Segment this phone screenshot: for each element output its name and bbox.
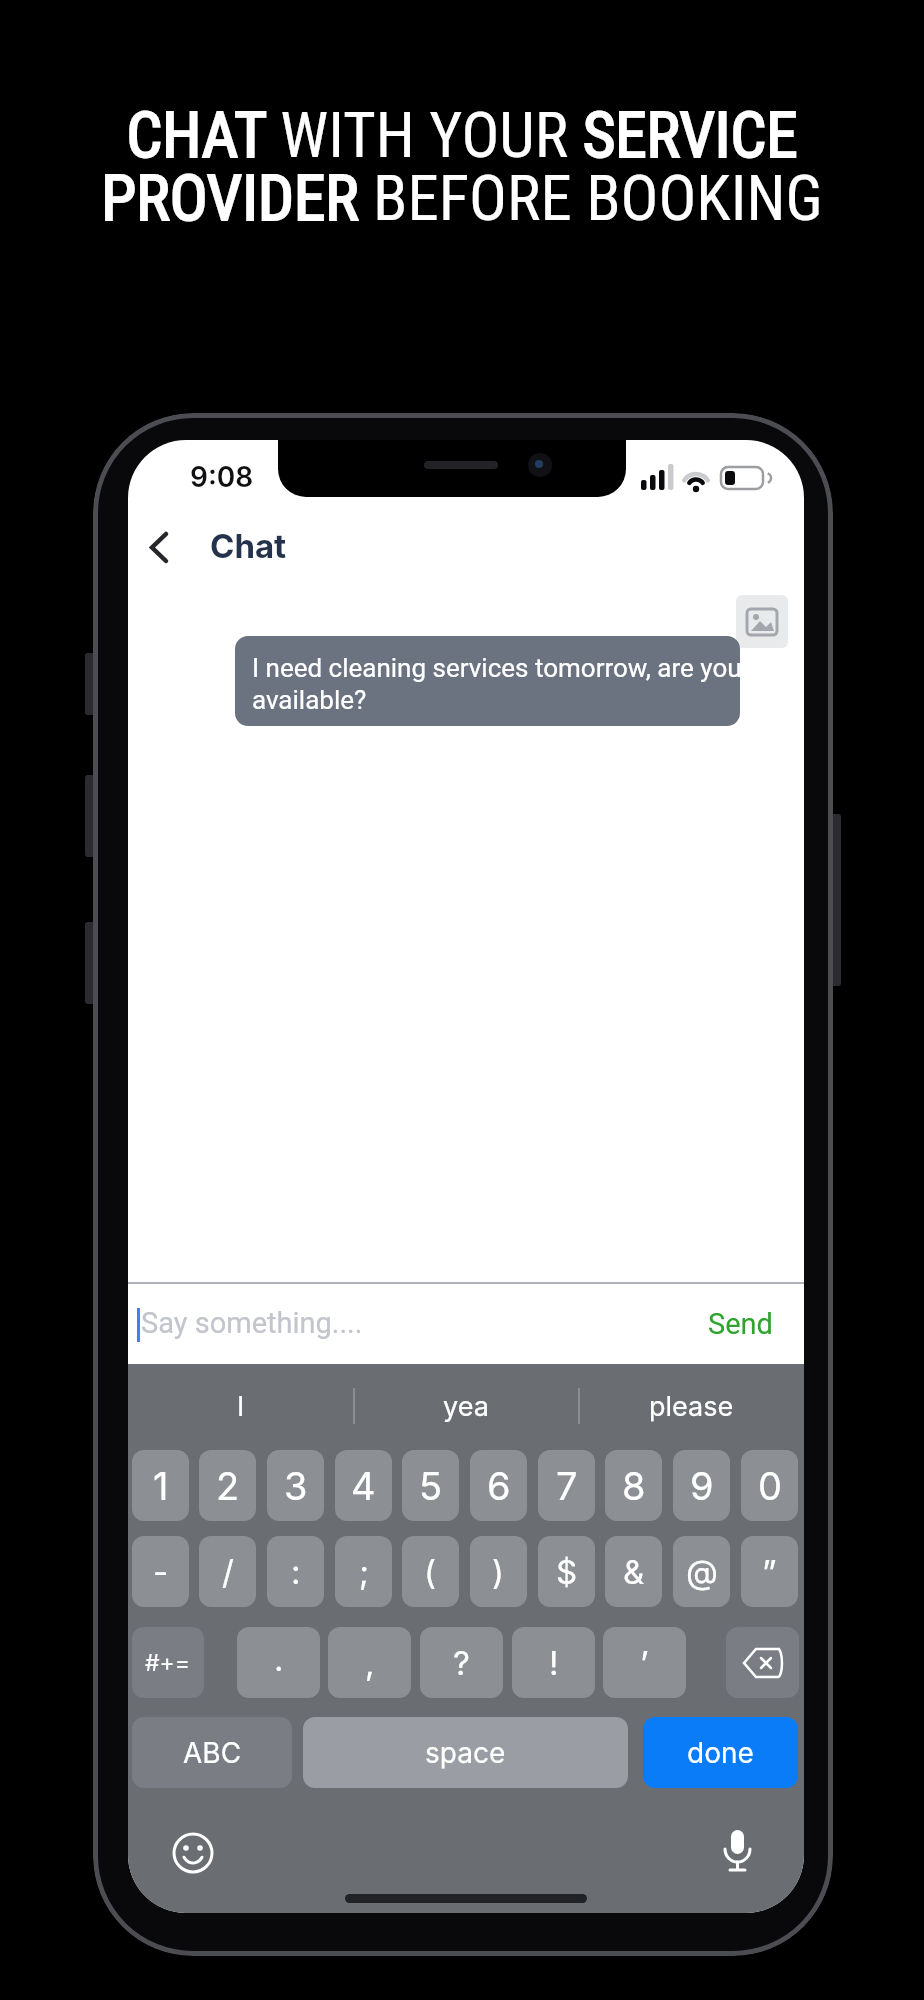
button[interactable]: space [303, 1717, 628, 1788]
staticText: Say something.... [141, 1306, 363, 1340]
staticText: ( [424, 1552, 437, 1592]
button[interactable] [736, 595, 788, 648]
staticText: 5 [419, 1463, 443, 1509]
button[interactable]: ; [335, 1536, 392, 1607]
staticText: ABC [183, 1736, 242, 1770]
button[interactable]: ! [512, 1627, 595, 1698]
staticText: 6 [487, 1463, 511, 1509]
button[interactable]: 9 [673, 1450, 730, 1521]
button[interactable]: please [578, 1383, 804, 1429]
button[interactable]: Say something.... [128, 1284, 804, 1364]
staticText: #+= [145, 1649, 191, 1677]
staticText: 4 [351, 1463, 376, 1509]
button[interactable]: 2 [199, 1450, 256, 1521]
staticText: I [237, 1390, 245, 1423]
staticText: 2 [216, 1463, 240, 1509]
staticText: done [687, 1736, 754, 1770]
button[interactable]: ” [741, 1536, 798, 1607]
staticText: 9 [690, 1463, 714, 1509]
staticText: @ [686, 1552, 718, 1592]
staticText: . [274, 1639, 284, 1679]
staticText: 9:08 [190, 460, 254, 494]
button[interactable]: ABC [132, 1717, 292, 1788]
staticText: ? [453, 1643, 470, 1683]
button[interactable]: - [132, 1536, 189, 1607]
button[interactable]: , [328, 1627, 411, 1698]
button[interactable]: $ [538, 1536, 595, 1607]
staticText: ; [359, 1552, 369, 1592]
button[interactable]: ) [470, 1536, 527, 1607]
button[interactable]: Send [708, 1307, 773, 1341]
staticText: 0 [758, 1463, 782, 1509]
button[interactable]: 7 [538, 1450, 595, 1521]
staticText: , [365, 1643, 375, 1683]
button[interactable]: yea [353, 1383, 578, 1429]
staticText: please [649, 1390, 734, 1423]
button[interactable]: ( [402, 1536, 459, 1607]
button[interactable]: ? [420, 1627, 503, 1698]
staticText: & [623, 1552, 645, 1592]
button[interactable]: 6 [470, 1450, 527, 1521]
button[interactable] [726, 1627, 799, 1698]
button[interactable]: 3 [267, 1450, 324, 1521]
staticText: I need cleaning services tomorrow, are y… [252, 653, 740, 716]
button[interactable] [168, 1828, 218, 1878]
button[interactable]: & [605, 1536, 662, 1607]
staticText: ” [762, 1552, 777, 1592]
staticText: / [222, 1552, 234, 1592]
button[interactable]: 5 [402, 1450, 459, 1521]
staticText: ! [549, 1643, 559, 1683]
button[interactable]: 0 [741, 1450, 798, 1521]
button[interactable] [713, 1826, 763, 1878]
button[interactable]: . [237, 1627, 320, 1698]
staticText: - [153, 1552, 169, 1592]
staticText: ) [492, 1552, 505, 1592]
button[interactable] [136, 520, 186, 570]
staticText: 7 [556, 1463, 578, 1509]
staticText: Chat [210, 526, 287, 566]
staticText: $ [556, 1552, 578, 1592]
button[interactable]: ’ [603, 1627, 686, 1698]
button[interactable]: 4 [335, 1450, 392, 1521]
button[interactable]: done [643, 1717, 798, 1788]
staticText: 1 [153, 1463, 169, 1509]
button[interactable]: 8 [605, 1450, 662, 1521]
button[interactable]: @ [673, 1536, 730, 1607]
button[interactable]: / [199, 1536, 256, 1607]
staticText: yea [443, 1390, 489, 1423]
button[interactable]: : [267, 1536, 324, 1607]
staticText: space [425, 1736, 506, 1770]
staticText: PROVIDER BEFORE BOOKING [0, 162, 924, 236]
button[interactable]: #+= [132, 1627, 204, 1698]
staticText: : [291, 1552, 301, 1592]
button[interactable]: 1 [132, 1450, 189, 1521]
staticText: 8 [622, 1463, 646, 1509]
button[interactable]: I [128, 1383, 353, 1429]
staticText: ’ [640, 1643, 649, 1683]
staticText: 3 [284, 1463, 308, 1509]
staticText: CHAT WITH YOUR SERVICE [0, 99, 924, 173]
